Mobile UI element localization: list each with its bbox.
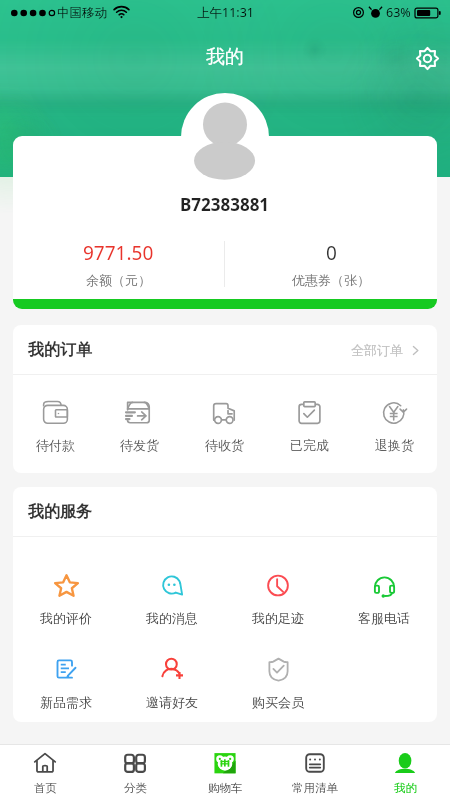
staticText: 已完成 xyxy=(290,437,329,453)
staticText: 购买会员 xyxy=(252,694,304,710)
button[interactable]: 购买会员 xyxy=(225,657,331,710)
button[interactable]: 我的评价 xyxy=(13,573,119,626)
button[interactable]: 我的足迹 xyxy=(225,573,331,626)
staticText: 待发货 xyxy=(120,437,159,453)
staticText: 新品需求 xyxy=(40,694,92,710)
staticText: 客服电话 xyxy=(358,610,410,626)
button[interactable]: 邀请好友 xyxy=(119,657,225,710)
button[interactable]: 新品需求 xyxy=(13,657,119,710)
staticText: 我的 xyxy=(206,45,244,69)
button[interactable]: 我的 xyxy=(360,745,450,795)
staticText: 9771.50 xyxy=(83,240,154,266)
staticText: 常用清单 xyxy=(292,781,338,795)
staticText: 我的 xyxy=(394,781,417,795)
button[interactable]: 常用清单 xyxy=(270,745,360,795)
staticText: 0 xyxy=(326,240,337,266)
staticText: 购物车 xyxy=(208,781,243,795)
button[interactable]: 首页 xyxy=(0,745,90,795)
button[interactable]: 9771.50 xyxy=(13,240,224,288)
button[interactable]: 分类 xyxy=(90,745,180,795)
staticText: 我的服务 xyxy=(28,502,92,522)
button[interactable]: 0 xyxy=(225,240,437,288)
staticText: 余额（元） xyxy=(86,272,151,288)
staticText: 63% xyxy=(386,4,411,21)
staticText: 我的订单 xyxy=(28,340,92,360)
button[interactable]: 我的消息 xyxy=(119,573,225,626)
button[interactable]: 待收货 xyxy=(182,399,267,453)
staticText: 全部订单 xyxy=(351,342,403,358)
staticText: 待收货 xyxy=(205,437,244,453)
button[interactable]: 客服电话 xyxy=(331,573,437,626)
button[interactable]: Settings xyxy=(409,40,445,76)
button[interactable]: 待付款 xyxy=(13,399,97,453)
staticText: 分类 xyxy=(124,781,147,795)
staticText: 首页 xyxy=(34,781,57,795)
staticText: B72383881 xyxy=(180,193,270,216)
staticText: 中国移动 xyxy=(57,5,107,21)
staticText: 待付款 xyxy=(36,437,75,453)
staticText: 我的消息 xyxy=(146,610,198,626)
button[interactable]: 购物车 xyxy=(180,745,270,795)
staticText: 我的足迹 xyxy=(252,610,304,626)
button[interactable]: 退换货 xyxy=(352,399,437,453)
staticText: 优惠券（张） xyxy=(292,272,370,288)
button[interactable]: 全部订单 xyxy=(349,334,424,366)
staticText: 退换货 xyxy=(375,437,414,453)
button[interactable]: 待发货 xyxy=(97,399,182,453)
staticText: 邀请好友 xyxy=(146,694,198,710)
staticText: 我的评价 xyxy=(40,610,92,626)
staticText: 上午11:31 xyxy=(197,4,254,21)
button[interactable]: 已完成 xyxy=(267,399,352,453)
